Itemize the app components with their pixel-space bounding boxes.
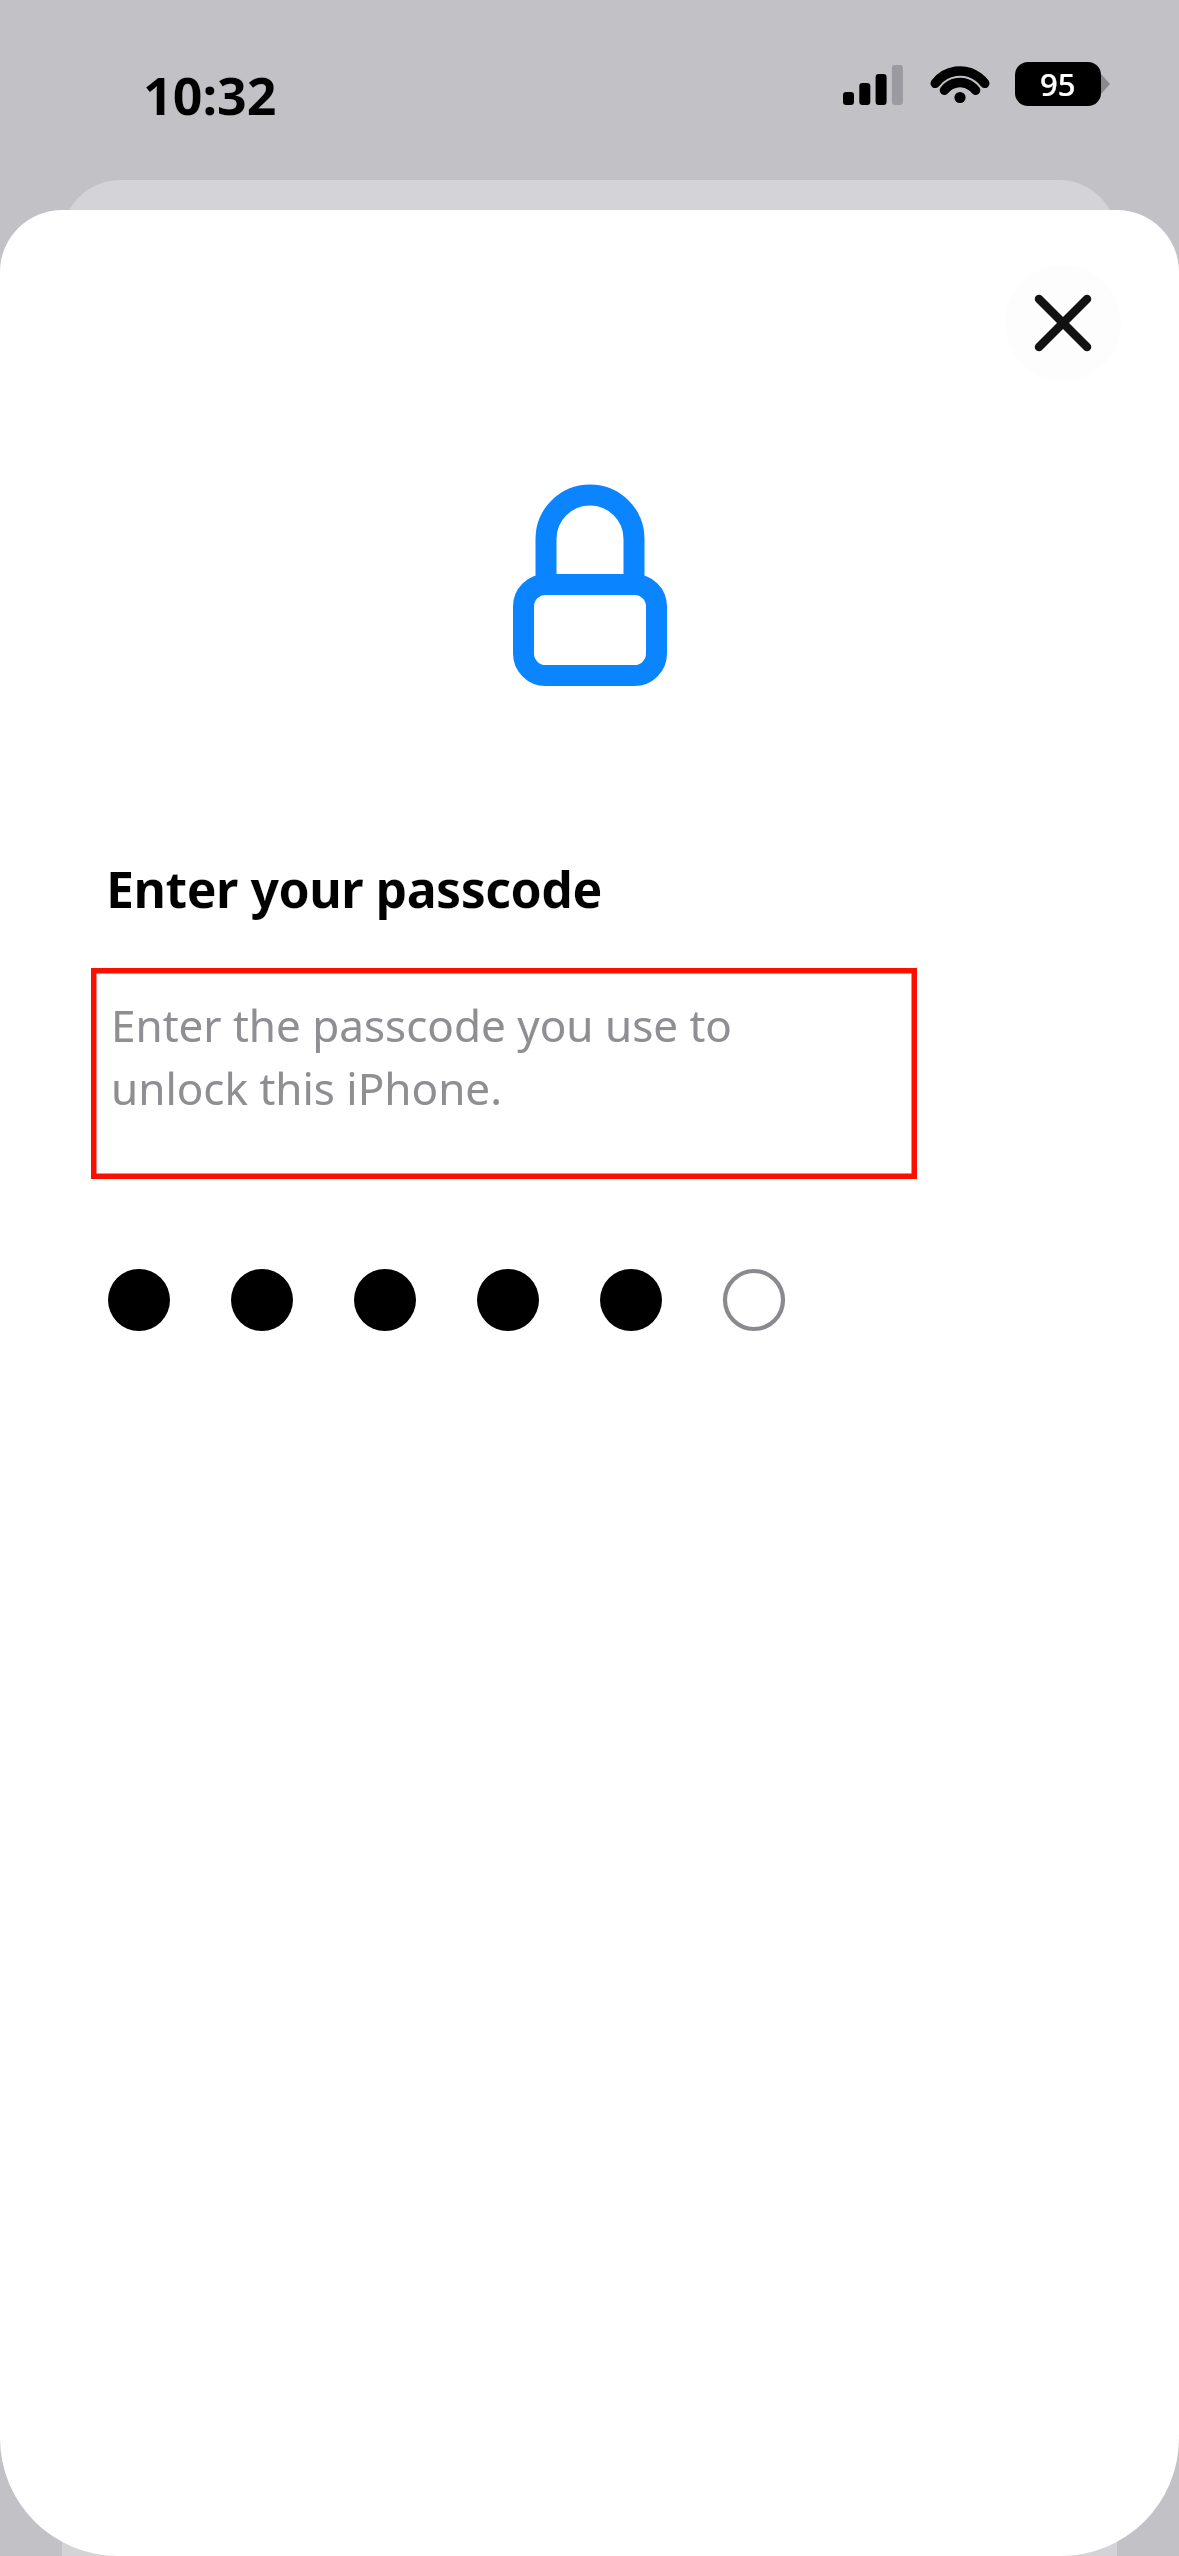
staticText: Enter your passcode bbox=[106, 855, 602, 923]
staticText: Enter the passcode you use to unlock thi… bbox=[111, 995, 732, 1118]
staticText: 95 bbox=[1040, 63, 1076, 105]
button[interactable]: Close bbox=[1005, 265, 1121, 381]
staticText: 10:32 bbox=[143, 59, 277, 130]
